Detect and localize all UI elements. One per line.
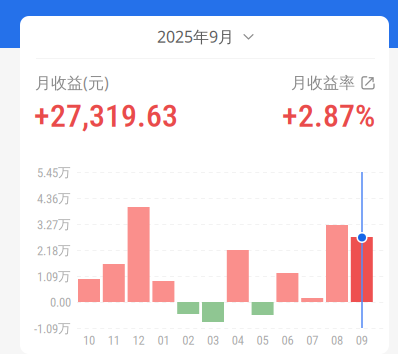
staticText: 5.45万 (37, 164, 71, 180)
staticText: 08 (331, 333, 343, 348)
staticText: 月收益(元) (35, 72, 109, 93)
staticText: 2.18万 (37, 242, 71, 258)
staticText: 04 (232, 333, 244, 348)
staticText: 3.27万 (37, 216, 71, 232)
staticText: 1.09万 (37, 268, 71, 284)
staticText: 月收益率 (291, 73, 355, 93)
staticText: 2025年9月 (157, 26, 234, 47)
staticText: 05 (257, 333, 269, 348)
staticText: +2.87% (282, 97, 375, 134)
staticText: 11 (108, 333, 120, 348)
staticText: 02 (182, 333, 194, 348)
staticText: 4.36万 (37, 190, 71, 206)
staticText: +27,319.63 (34, 97, 178, 134)
staticText: 12 (133, 333, 145, 348)
staticText: -1.09万 (34, 320, 71, 336)
button[interactable]: 月收益率 (291, 73, 375, 93)
staticText: 06 (281, 333, 293, 348)
button[interactable]: 2025年9月 (149, 20, 262, 53)
staticText: 01 (157, 333, 169, 348)
staticText: 10 (83, 333, 95, 348)
staticText: 0.00 (50, 295, 71, 310)
staticText: 03 (207, 333, 219, 348)
staticText: 09 (356, 333, 368, 348)
staticText: 07 (306, 333, 318, 348)
